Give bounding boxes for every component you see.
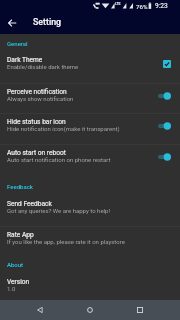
button[interactable]: Toggle on — [158, 92, 171, 100]
staticText: Version — [7, 278, 30, 286]
staticText: Feedback — [7, 183, 33, 190]
button[interactable]: Perceive notification — [0, 86, 180, 116]
staticText: About — [7, 261, 24, 268]
staticText: If you like the app, please rate it on p… — [7, 238, 125, 245]
staticText: Rate App — [7, 231, 34, 239]
staticText: Dark Theme — [7, 56, 43, 64]
button[interactable]: Dark theme enabled — [163, 60, 171, 68]
staticText: 76% — [136, 3, 148, 10]
staticText: Got any queries? We are happy to help! — [7, 207, 110, 214]
button[interactable]: Recent apps — [130, 300, 150, 320]
staticText: Enable/disable dark theme — [7, 63, 79, 70]
staticText: Setting — [33, 17, 62, 27]
button[interactable]: Send Feedback — [0, 198, 180, 229]
button[interactable]: Toggle on — [158, 153, 171, 161]
button[interactable]: Version — [0, 276, 180, 296]
button[interactable]: Hide status bar icon — [0, 116, 180, 147]
staticText: LTE — [115, 2, 121, 6]
button[interactable]: Rate App — [0, 229, 180, 255]
staticText: 1.0 — [7, 285, 16, 292]
staticText: Auto start on reboot — [7, 149, 66, 157]
staticText: Always show notification — [7, 95, 74, 102]
staticText: 9:23 — [155, 2, 168, 10]
button[interactable]: Back — [30, 300, 50, 320]
button[interactable]: Home — [80, 300, 100, 320]
staticText: General — [7, 40, 28, 47]
button[interactable]: Auto start on reboot — [0, 147, 180, 177]
staticText: Perceive notification — [7, 88, 67, 96]
staticText: Hide status bar icon — [7, 118, 66, 126]
button[interactable]: Toggle on — [158, 122, 171, 130]
staticText: Hide notification icon(make it transpare… — [7, 125, 120, 132]
staticText: Send Feedback — [7, 200, 52, 208]
staticText: Auto start notification on phone restart — [7, 156, 111, 163]
button[interactable]: Dark Theme — [0, 54, 180, 86]
button[interactable]: Back — [2, 13, 21, 32]
